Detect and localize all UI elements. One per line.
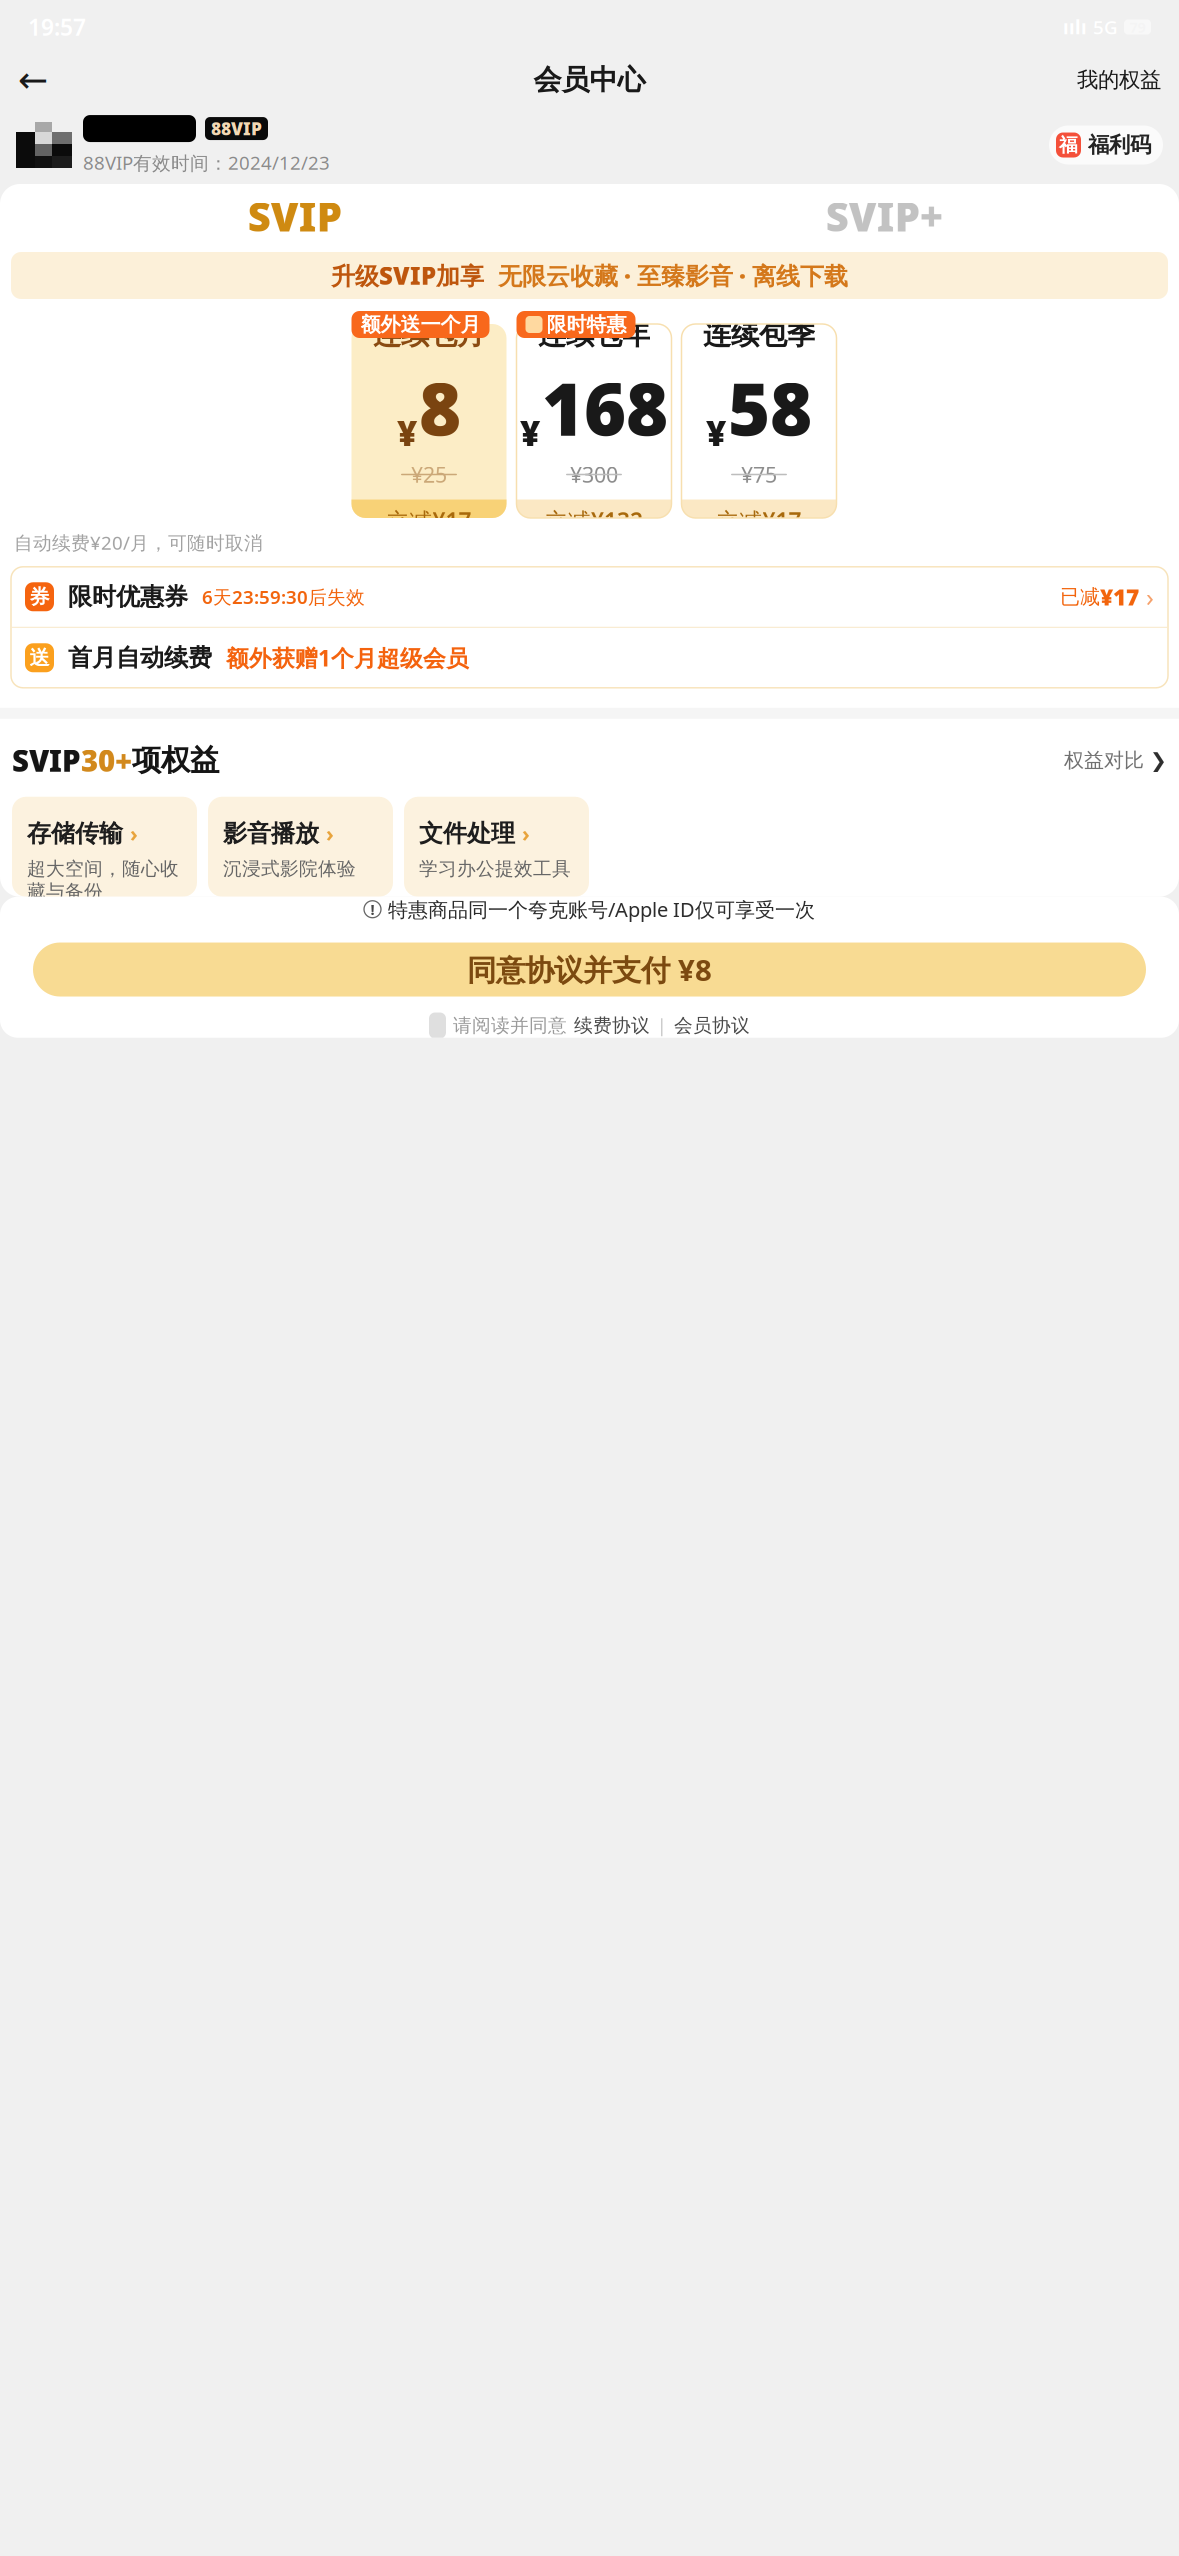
button[interactable]: 文件处理 [404,797,589,897]
button[interactable]: 我的权益 [1069,57,1169,103]
button[interactable]: 影音播放 [208,797,393,897]
staticText: ¥300 [570,460,618,489]
button[interactable]: 送 [11,628,1168,688]
staticText: 会员协议 [674,1014,750,1037]
staticText: 特惠商品同一个夸克账号/Apple ID仅可享受一次 [388,896,815,923]
button[interactable]: 同意协议并支付 ¥8 [33,942,1146,996]
staticText: 学习办公提效工具 [419,857,571,880]
staticText: 立减¥132 [545,505,643,536]
button[interactable]: 权益对比 [1064,742,1167,778]
button[interactable]: 券 [11,567,1168,627]
staticText: SVIP+ [826,189,943,242]
button[interactable]: 存储传输 [12,797,197,897]
staticText: 同意协议并支付 ¥8 [467,950,712,989]
staticText: 会员中心 [533,63,645,97]
staticText: SVIP [12,741,81,780]
staticText: ❯ [1150,749,1167,772]
staticText: 额外获赠1个月超级会员 [226,643,469,673]
staticText: 送 [29,645,49,670]
staticText: 我的权益 [1077,67,1161,93]
staticText: 影音播放 [223,819,319,848]
staticText: 连续包月 [373,317,485,352]
staticText: 已减 [1060,584,1100,609]
staticText: › [130,819,138,848]
staticText: 88VIP [211,117,262,140]
button[interactable]: 请阅读并同意 [429,1008,750,1042]
staticText: 首月自动续费 [54,643,226,673]
staticText: ! [370,899,374,919]
staticText: 项权益 [132,742,219,778]
staticText: 超大空间，随心收藏与备份 [27,857,179,903]
staticText: 文件处理 [419,819,515,848]
staticText: › [1139,580,1154,614]
staticText: ıılı [1063,15,1087,39]
staticText: 8 [419,360,461,455]
staticText: › [326,819,334,848]
staticText: 自动续费¥20/月，可随时取消 [14,530,263,555]
staticText: 福利码 [1088,132,1151,158]
staticText: 福 [1059,133,1078,156]
staticText: SVIP [248,189,342,242]
staticText: 5G [1093,15,1118,39]
staticText: 30+ [81,741,132,780]
button[interactable]: Back [10,57,56,103]
staticText: 额外送一个月 [360,312,480,337]
button[interactable]: SVIP [0,184,589,248]
button[interactable]: 福 [1049,125,1163,164]
staticText: | [657,1014,667,1037]
staticText: 续费协议 [574,1014,650,1037]
staticText: ¥ [706,409,726,455]
button[interactable]: SVIP+ [589,184,1179,248]
staticText: 请阅读并同意 [453,1014,567,1037]
staticText: ¥25 [411,460,447,489]
staticText: 沉浸式影院体验 [223,857,356,880]
staticText: 限时特惠 [546,312,626,337]
staticText: 58 [728,360,812,455]
staticText: 88VIP有效时间：2024/12/23 [83,150,330,175]
staticText: 无限云收藏 · 至臻影音 · 离线下载 [484,260,848,291]
staticText: 限时优惠券 [54,582,202,612]
staticText: 168 [542,360,668,455]
staticText: 立减¥17 [716,505,801,536]
staticText: 升级SVIP加享 [331,260,484,291]
staticText: ¥ [520,409,540,455]
staticText: ¥75 [741,460,777,489]
staticText: 连续包季 [703,317,815,352]
staticText: 6天23:59:30后失效 [202,584,365,609]
staticText: 19:57 [28,12,86,42]
staticText: 存储传输 [27,819,123,848]
staticText: 券 [29,584,49,609]
staticText: 连续包年 [538,317,650,352]
staticText: 立减¥17 [386,505,471,536]
staticText: › [522,819,530,848]
staticText: 权益对比 [1064,748,1144,773]
staticText: ← [18,60,48,100]
staticText: ¥17 [1100,582,1139,612]
staticText: ¥ [397,409,417,455]
